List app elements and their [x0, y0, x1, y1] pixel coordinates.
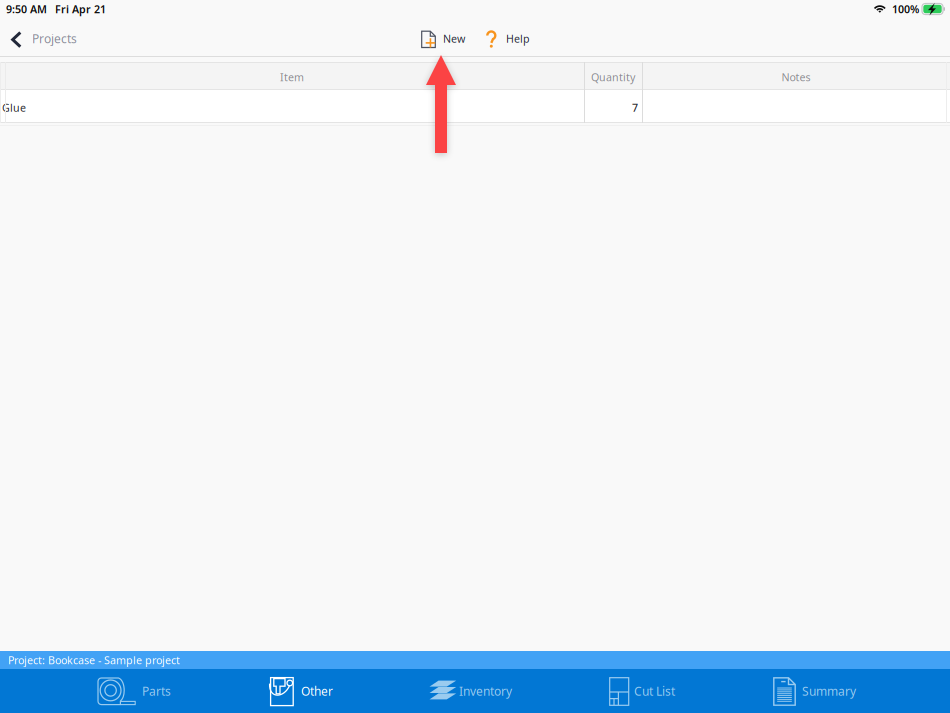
button[interactable]: Summary — [730, 669, 900, 713]
staticText: Glue — [2, 100, 26, 115]
staticText: Item — [280, 70, 304, 84]
staticText: Inventory — [459, 683, 512, 699]
button[interactable]: Other — [220, 669, 390, 713]
staticText: Projects — [32, 30, 77, 46]
button[interactable]: Help — [486, 18, 530, 57]
staticText: 7 — [632, 100, 638, 115]
staticText: Project: Bookcase - Sample project — [8, 653, 180, 667]
staticText: 100% — [892, 2, 919, 16]
staticText: Notes — [781, 70, 810, 84]
staticText: Summary — [802, 683, 856, 699]
button[interactable]: Parts — [50, 669, 220, 713]
staticText: Fri Apr 21 — [55, 2, 106, 16]
staticText: Other — [301, 683, 333, 699]
staticText: 9:50 AM — [6, 2, 47, 16]
button[interactable]: New — [421, 18, 465, 57]
staticText: Cut List — [634, 683, 675, 699]
staticText: Help — [506, 31, 530, 46]
button[interactable]: Projects — [0, 18, 87, 57]
button[interactable]: Inventory — [390, 669, 560, 713]
staticText: Parts — [142, 683, 171, 699]
staticText: Quantity — [591, 70, 635, 84]
button[interactable]: Cut List — [560, 669, 730, 713]
staticText: New — [443, 31, 465, 46]
